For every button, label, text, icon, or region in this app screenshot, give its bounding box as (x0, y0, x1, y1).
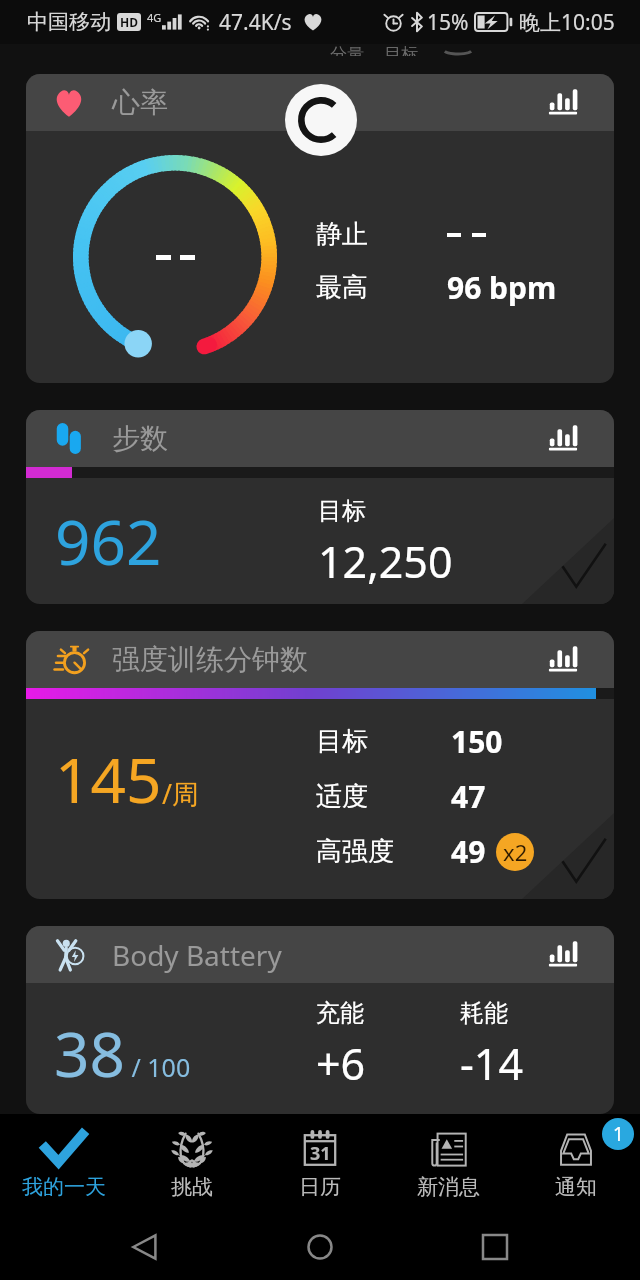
button[interactable]: 挑战 (128, 1114, 256, 1214)
button[interactable]: Connect (285, 84, 357, 156)
staticText: 挑战 (171, 1174, 213, 1200)
staticText: 38 (54, 1011, 125, 1095)
staticText: Body Battery (112, 936, 282, 974)
button[interactable]: 新消息 (384, 1114, 512, 1214)
staticText: 962 (55, 499, 162, 583)
button[interactable]: 31 (256, 1114, 384, 1214)
staticText: 充能 (316, 998, 364, 1028)
staticText: 目标 (316, 725, 368, 758)
button[interactable]: 我的一天 (0, 1114, 128, 1214)
staticText: 晚上10:05 (519, 8, 615, 37)
staticText: 中国移动 (27, 9, 111, 35)
staticText: 47 (451, 776, 486, 817)
staticText: 高强度 (316, 835, 394, 868)
staticText: 分量 (330, 44, 364, 56)
button[interactable]: Body Battery (26, 926, 614, 1114)
staticText: 我的一天 (22, 1174, 106, 1200)
button[interactable]: 强度训练分钟数 (26, 631, 614, 899)
staticText: 心率 (112, 85, 168, 120)
button[interactable]: Chart (540, 935, 586, 975)
staticText: x2 (503, 837, 528, 867)
button[interactable]: 通知 (512, 1114, 640, 1214)
staticText: 新消息 (417, 1174, 480, 1200)
staticText: 最高 (316, 271, 368, 304)
staticText: / 100 (125, 1050, 191, 1084)
staticText: 强度训练分钟数 (112, 642, 308, 677)
staticText: 49 (451, 831, 486, 872)
staticText: +6 (316, 1034, 366, 1093)
staticText: 4G (147, 10, 162, 25)
staticText: -14 (460, 1034, 524, 1093)
staticText: 静止 (316, 218, 368, 251)
button[interactable]: Chart (540, 640, 586, 680)
staticText: 适度 (316, 780, 368, 813)
button[interactable]: Recents (465, 1217, 525, 1277)
staticText: 目标 (384, 44, 418, 56)
button[interactable]: 步数 (26, 410, 614, 604)
staticText: 目标 (318, 496, 366, 526)
staticText: 通知 (555, 1174, 597, 1200)
staticText: 31 (310, 1141, 331, 1166)
staticText: 150 (451, 721, 503, 762)
staticText: HD (120, 14, 138, 30)
staticText: 15% (427, 8, 469, 37)
staticText: 日历 (299, 1174, 341, 1200)
button[interactable]: Chart (540, 83, 586, 123)
button[interactable]: Chart (540, 419, 586, 459)
staticText: 步数 (112, 421, 168, 456)
staticText: /周 (162, 775, 200, 812)
staticText: 145 (55, 737, 162, 821)
button[interactable]: 心率 (26, 74, 614, 383)
staticText: 12,250 (318, 532, 453, 591)
staticText: 耗能 (460, 998, 508, 1028)
staticText: 1 (613, 1121, 624, 1147)
button[interactable]: Back (115, 1217, 175, 1277)
staticText: 47.4K/s (219, 8, 292, 37)
button[interactable]: Home (290, 1217, 350, 1277)
staticText: 96 bpm (447, 267, 557, 308)
